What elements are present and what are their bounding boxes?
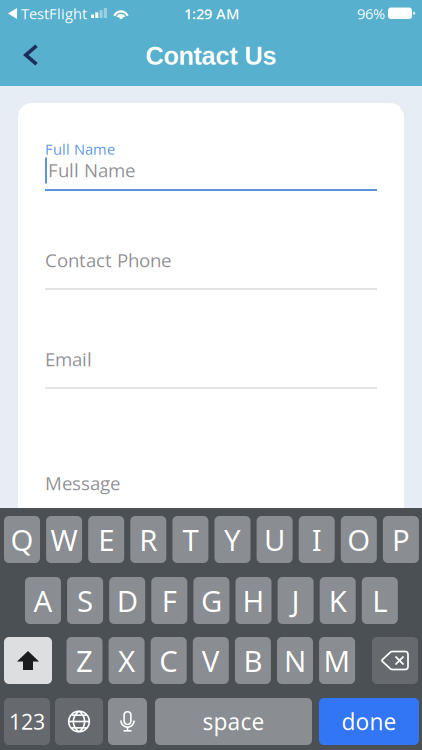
button[interactable]: Q [4, 516, 40, 563]
staticText: Message [45, 470, 120, 496]
staticText: J [292, 581, 300, 620]
button[interactable]: O [341, 516, 377, 563]
staticText: A [33, 581, 52, 620]
button[interactable]: E [88, 516, 124, 563]
button[interactable]: P [383, 516, 419, 563]
button[interactable]: Dictate [108, 698, 147, 745]
staticText: O [347, 520, 370, 559]
button[interactable]: D [109, 577, 145, 624]
staticText: D [117, 581, 138, 620]
staticText: E [98, 520, 114, 559]
button[interactable]: Y [214, 516, 250, 563]
staticText: X [118, 641, 135, 680]
button[interactable]: J [278, 577, 314, 624]
button[interactable]: A [25, 577, 61, 624]
staticText: R [139, 520, 157, 559]
staticText: Q [10, 520, 33, 559]
button[interactable]: S [67, 577, 103, 624]
staticText: done [341, 706, 396, 736]
button[interactable]: T [172, 516, 208, 563]
button[interactable]: space [155, 698, 312, 745]
staticText: V [202, 641, 220, 680]
staticText: C [159, 641, 178, 680]
staticText: B [243, 641, 262, 680]
staticText: P [392, 520, 410, 559]
staticText: S [77, 581, 93, 620]
button[interactable]: K [320, 577, 356, 624]
button[interactable]: V [193, 637, 229, 684]
staticText: space [202, 706, 264, 736]
staticText: Full Name [48, 157, 135, 183]
staticText: 96% [357, 3, 385, 23]
button[interactable]: X [109, 637, 145, 684]
button[interactable]: F [151, 577, 187, 624]
staticText: T [182, 520, 198, 559]
button[interactable]: I [299, 516, 335, 563]
staticText: M [324, 641, 351, 680]
staticText: 123 [9, 707, 45, 736]
button[interactable]: Shift [4, 637, 52, 684]
button[interactable]: Delete [372, 637, 418, 684]
staticText: TestFlight [21, 3, 87, 23]
staticText: F [162, 581, 177, 620]
button[interactable]: B [235, 637, 271, 684]
button[interactable]: done [319, 698, 419, 745]
button[interactable]: H [235, 577, 271, 624]
staticText: K [329, 581, 347, 620]
button[interactable]: N [277, 637, 313, 684]
staticText: U [264, 520, 285, 559]
staticText: Full Name [45, 139, 115, 159]
staticText: Contact Us [145, 42, 276, 70]
staticText: I [312, 520, 322, 559]
button[interactable]: C [151, 637, 187, 684]
button[interactable]: M [319, 637, 355, 684]
button[interactable]: G [193, 577, 229, 624]
button[interactable]: 123 [4, 698, 50, 745]
button[interactable]: Next keyboard [55, 698, 103, 745]
staticText: Y [224, 520, 241, 559]
staticText: W [51, 520, 78, 559]
button[interactable]: Z [66, 637, 102, 684]
staticText: Email [45, 346, 92, 372]
button[interactable]: Back [9, 33, 53, 77]
button[interactable]: L [362, 577, 398, 624]
button[interactable]: W [46, 516, 82, 563]
button[interactable]: R [130, 516, 166, 563]
button[interactable]: U [257, 516, 293, 563]
staticText: Z [76, 641, 93, 680]
staticText: L [372, 581, 387, 620]
staticText: H [242, 581, 264, 620]
staticText: N [284, 641, 306, 680]
staticText: G [201, 581, 222, 620]
staticText: Contact Phone [45, 247, 171, 273]
staticText: 1:29 AM [184, 3, 240, 23]
